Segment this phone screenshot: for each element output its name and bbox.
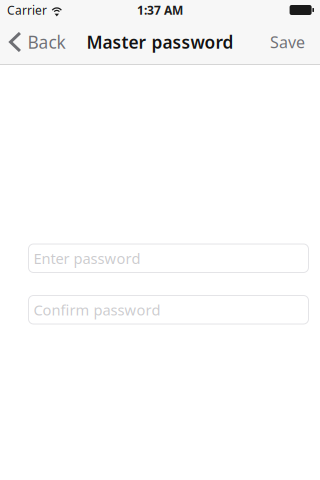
staticText: Enter password — [33, 248, 140, 268]
staticText: 1:37 AM — [137, 2, 183, 18]
button[interactable]: Confirm password — [28, 295, 308, 324]
staticText: Back — [27, 30, 65, 53]
staticText: Carrier — [7, 2, 47, 18]
button[interactable]: Back — [0, 20, 73, 64]
staticText: Confirm password — [33, 300, 160, 319]
staticText: Master password — [86, 30, 233, 53]
button[interactable]: Enter password — [28, 244, 308, 272]
staticText: Save — [270, 31, 305, 53]
button[interactable]: Save — [260, 20, 320, 64]
